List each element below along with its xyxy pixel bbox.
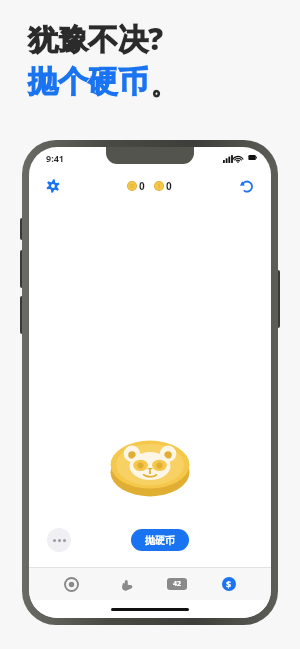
button[interactable]: Count 42 xyxy=(167,578,187,590)
button[interactable]: Store xyxy=(216,571,242,597)
staticText: 0 xyxy=(166,179,172,193)
staticText: 0 xyxy=(139,179,145,193)
button[interactable]: Tap xyxy=(113,571,139,597)
staticText: 9:41 xyxy=(46,152,64,164)
staticText: 。 xyxy=(151,71,175,101)
staticText: $ xyxy=(226,578,232,590)
button[interactable]: 抛硬币 xyxy=(131,529,189,551)
button[interactable]: More options xyxy=(47,528,71,552)
button[interactable]: Reset xyxy=(235,174,259,198)
staticText: 抛个硬币 xyxy=(28,63,148,101)
button[interactable]: Settings xyxy=(41,174,65,198)
staticText: 犹豫不决? xyxy=(28,18,164,59)
staticText: 抛硬币 xyxy=(145,534,175,547)
button[interactable]: Panda coin xyxy=(108,437,192,497)
button[interactable]: Coin xyxy=(58,571,84,597)
staticText: 42 xyxy=(173,579,182,589)
